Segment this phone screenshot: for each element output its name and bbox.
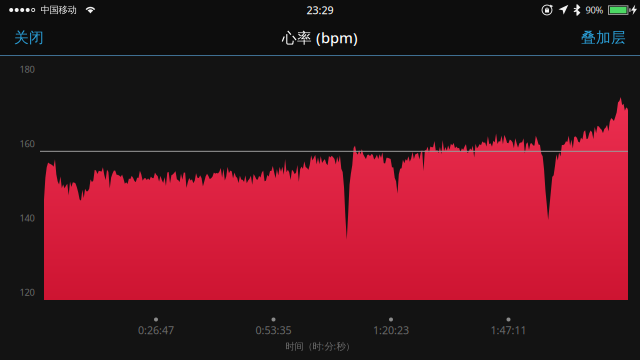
staticText: 心率 (bpm) [282,28,358,47]
staticText: 中国移动 [40,4,76,16]
staticText: 1:47:11 [490,323,526,337]
staticText: 1:20:23 [373,323,409,337]
staticText: 160 [19,137,34,150]
staticText: 0:26:47 [138,323,174,337]
staticText: 叠加层 [581,28,626,46]
button[interactable]: 叠加层 [581,28,626,46]
staticText: 140 [19,212,34,224]
staticText: 90% [585,4,603,16]
staticText: 关闭 [14,28,44,46]
button[interactable]: 关闭 [14,28,44,46]
staticText: 120 [19,286,34,298]
staticText: 0:53:35 [255,323,291,337]
staticText: 时间（时:分:秒） [285,340,354,352]
staticText: 180 [19,63,34,75]
staticText: 23:29 [306,3,333,17]
